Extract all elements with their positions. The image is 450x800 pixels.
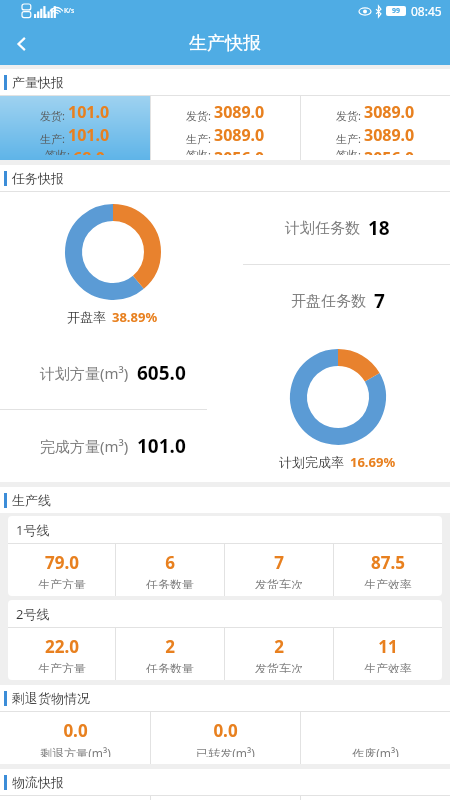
staticText: 任务快报 [12, 170, 64, 186]
button[interactable]: 作废(m³) [301, 712, 450, 764]
staticText: 3056.0 [214, 147, 265, 155]
staticText: 作废(m³) [352, 745, 399, 757]
staticText: 38.89% [112, 308, 158, 326]
staticText: 1号线 [16, 521, 50, 539]
staticText: 87.5 [371, 551, 405, 574]
staticText: 3089.0 [214, 101, 265, 123]
button[interactable]: 发货: [301, 96, 450, 160]
staticText: 18 [368, 215, 390, 241]
button[interactable]: 7 [225, 544, 333, 596]
staticText: 生产方量 [38, 661, 86, 673]
button[interactable]: 完成方量(m³) [0, 410, 225, 482]
button[interactable]: 2 [116, 628, 224, 680]
staticText: 计划任务数 [285, 219, 360, 238]
staticText: 生产效率 [364, 661, 412, 673]
staticText: 计划完成率 [279, 454, 344, 470]
staticText: 开盘任务数 [291, 292, 366, 311]
button[interactable]: 计划方量(m³) [0, 337, 225, 409]
button[interactable]: 0.0 [151, 712, 300, 764]
staticText: 3089.0 [364, 124, 415, 146]
staticText: 生产: [336, 131, 361, 146]
staticText: 7 [274, 551, 284, 574]
button[interactable]: 2 [225, 628, 333, 680]
staticText: 99 [392, 6, 401, 16]
staticText: 0.0 [213, 719, 238, 742]
button[interactable]: 6 [116, 544, 224, 596]
button[interactable]: 发货: [151, 96, 300, 160]
staticText: 生产: [186, 131, 211, 146]
staticText: K/s [64, 6, 75, 16]
button[interactable]: 发货: [0, 96, 150, 160]
button[interactable]: 11 [334, 628, 442, 680]
staticText: 生产效率 [364, 577, 412, 589]
button[interactable]: 1号线 [8, 516, 442, 596]
staticText: 发货车次 [255, 577, 303, 589]
staticText: 0.0 [63, 719, 88, 742]
staticText: 生产快报 [189, 32, 261, 55]
staticText: 计划方量(m³) [40, 363, 129, 383]
staticText: 开盘率 [67, 309, 106, 325]
staticText: 605.0 [137, 360, 186, 386]
staticText: 7 [374, 288, 385, 314]
staticText: 产量快报 [12, 74, 64, 90]
staticText: 签收: [45, 147, 70, 155]
staticText: 已转发(m³) [196, 745, 255, 757]
staticText: 101.0 [68, 124, 110, 146]
button[interactable]: 2号线 [8, 600, 442, 680]
staticText: 22.0 [45, 635, 79, 658]
staticText: 79.0 [45, 551, 79, 574]
staticText: 生产线 [12, 492, 51, 508]
button[interactable]: 79.0 [8, 544, 115, 596]
staticText: 发货: [336, 108, 361, 123]
button[interactable]: 0.0 [0, 712, 150, 764]
staticText: 剩退货物情况 [12, 690, 90, 706]
staticText: 签收: [336, 147, 361, 155]
button[interactable]: 87.5 [334, 544, 442, 596]
staticText: 68.0 [73, 147, 105, 155]
staticText: 2 [165, 635, 175, 658]
button[interactable]: 计划任务数 [225, 192, 450, 264]
staticText: 任务数量 [146, 577, 194, 589]
staticText: 生产: [40, 131, 65, 146]
button[interactable]: 22.0 [8, 628, 115, 680]
staticText: 3089.0 [214, 124, 265, 146]
staticText: 2号线 [16, 605, 50, 623]
staticText: 签收: [186, 147, 211, 155]
staticText: 剩退方量(m³) [40, 745, 111, 757]
staticText: 发货: [186, 108, 211, 123]
staticText: 2 [274, 635, 284, 658]
staticText: 6 [165, 551, 175, 574]
staticText: 3089.0 [364, 101, 415, 123]
staticText: 发货车次 [255, 661, 303, 673]
staticText: 任务数量 [146, 661, 194, 673]
staticText: 101.0 [68, 101, 110, 123]
staticText: 3056.0 [364, 147, 415, 155]
button[interactable]: 开盘任务数 [225, 265, 450, 337]
staticText: 生产方量 [38, 577, 86, 589]
staticText: 物流快报 [12, 774, 64, 790]
staticText: 08:45 [411, 3, 442, 19]
staticText: 16.69% [350, 453, 396, 471]
staticText: 发货: [40, 108, 65, 123]
staticText: 11 [378, 635, 398, 658]
staticText: 完成方量(m³) [40, 436, 129, 456]
staticText: 101.0 [137, 433, 186, 459]
button[interactable]: Back [0, 22, 43, 65]
